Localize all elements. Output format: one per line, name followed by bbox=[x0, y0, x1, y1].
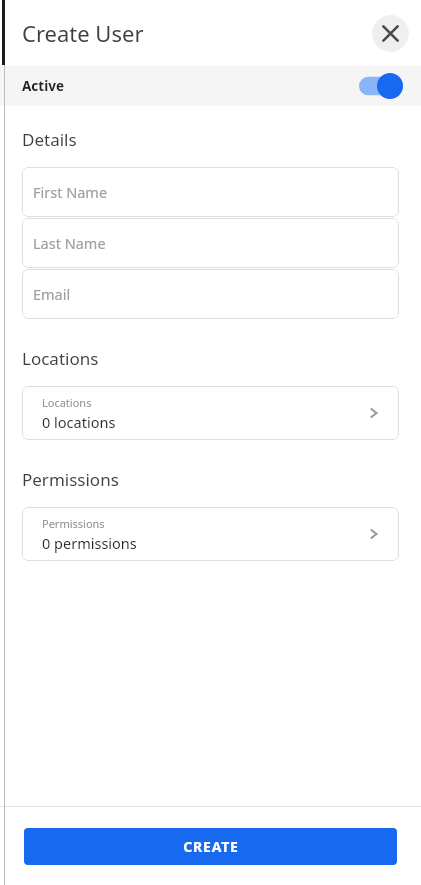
staticText: CREATE bbox=[183, 837, 239, 856]
staticText: Email bbox=[33, 284, 71, 304]
button[interactable]: First Name bbox=[22, 167, 399, 217]
button[interactable]: Last Name bbox=[22, 218, 399, 268]
staticText: Locations bbox=[42, 395, 92, 410]
button[interactable]: Active bbox=[0, 66, 421, 106]
staticText: Locations bbox=[22, 347, 99, 370]
staticText: First Name bbox=[33, 182, 108, 202]
staticText: Active bbox=[22, 77, 64, 95]
button[interactable]: Email bbox=[22, 269, 399, 319]
button[interactable]: Active toggle bbox=[359, 73, 403, 99]
button[interactable]: Permissions bbox=[22, 507, 399, 561]
button[interactable]: Locations bbox=[22, 386, 399, 440]
staticText: Permissions bbox=[42, 516, 105, 531]
staticText: 0 locations bbox=[42, 412, 116, 432]
staticText: 0 permissions bbox=[42, 533, 137, 553]
button[interactable]: Close bbox=[372, 15, 409, 52]
staticText: Details bbox=[22, 128, 77, 151]
staticText: Permissions bbox=[22, 468, 119, 491]
staticText: Create User bbox=[22, 18, 144, 48]
staticText: Last Name bbox=[33, 233, 106, 253]
button[interactable]: CREATE bbox=[24, 828, 397, 865]
